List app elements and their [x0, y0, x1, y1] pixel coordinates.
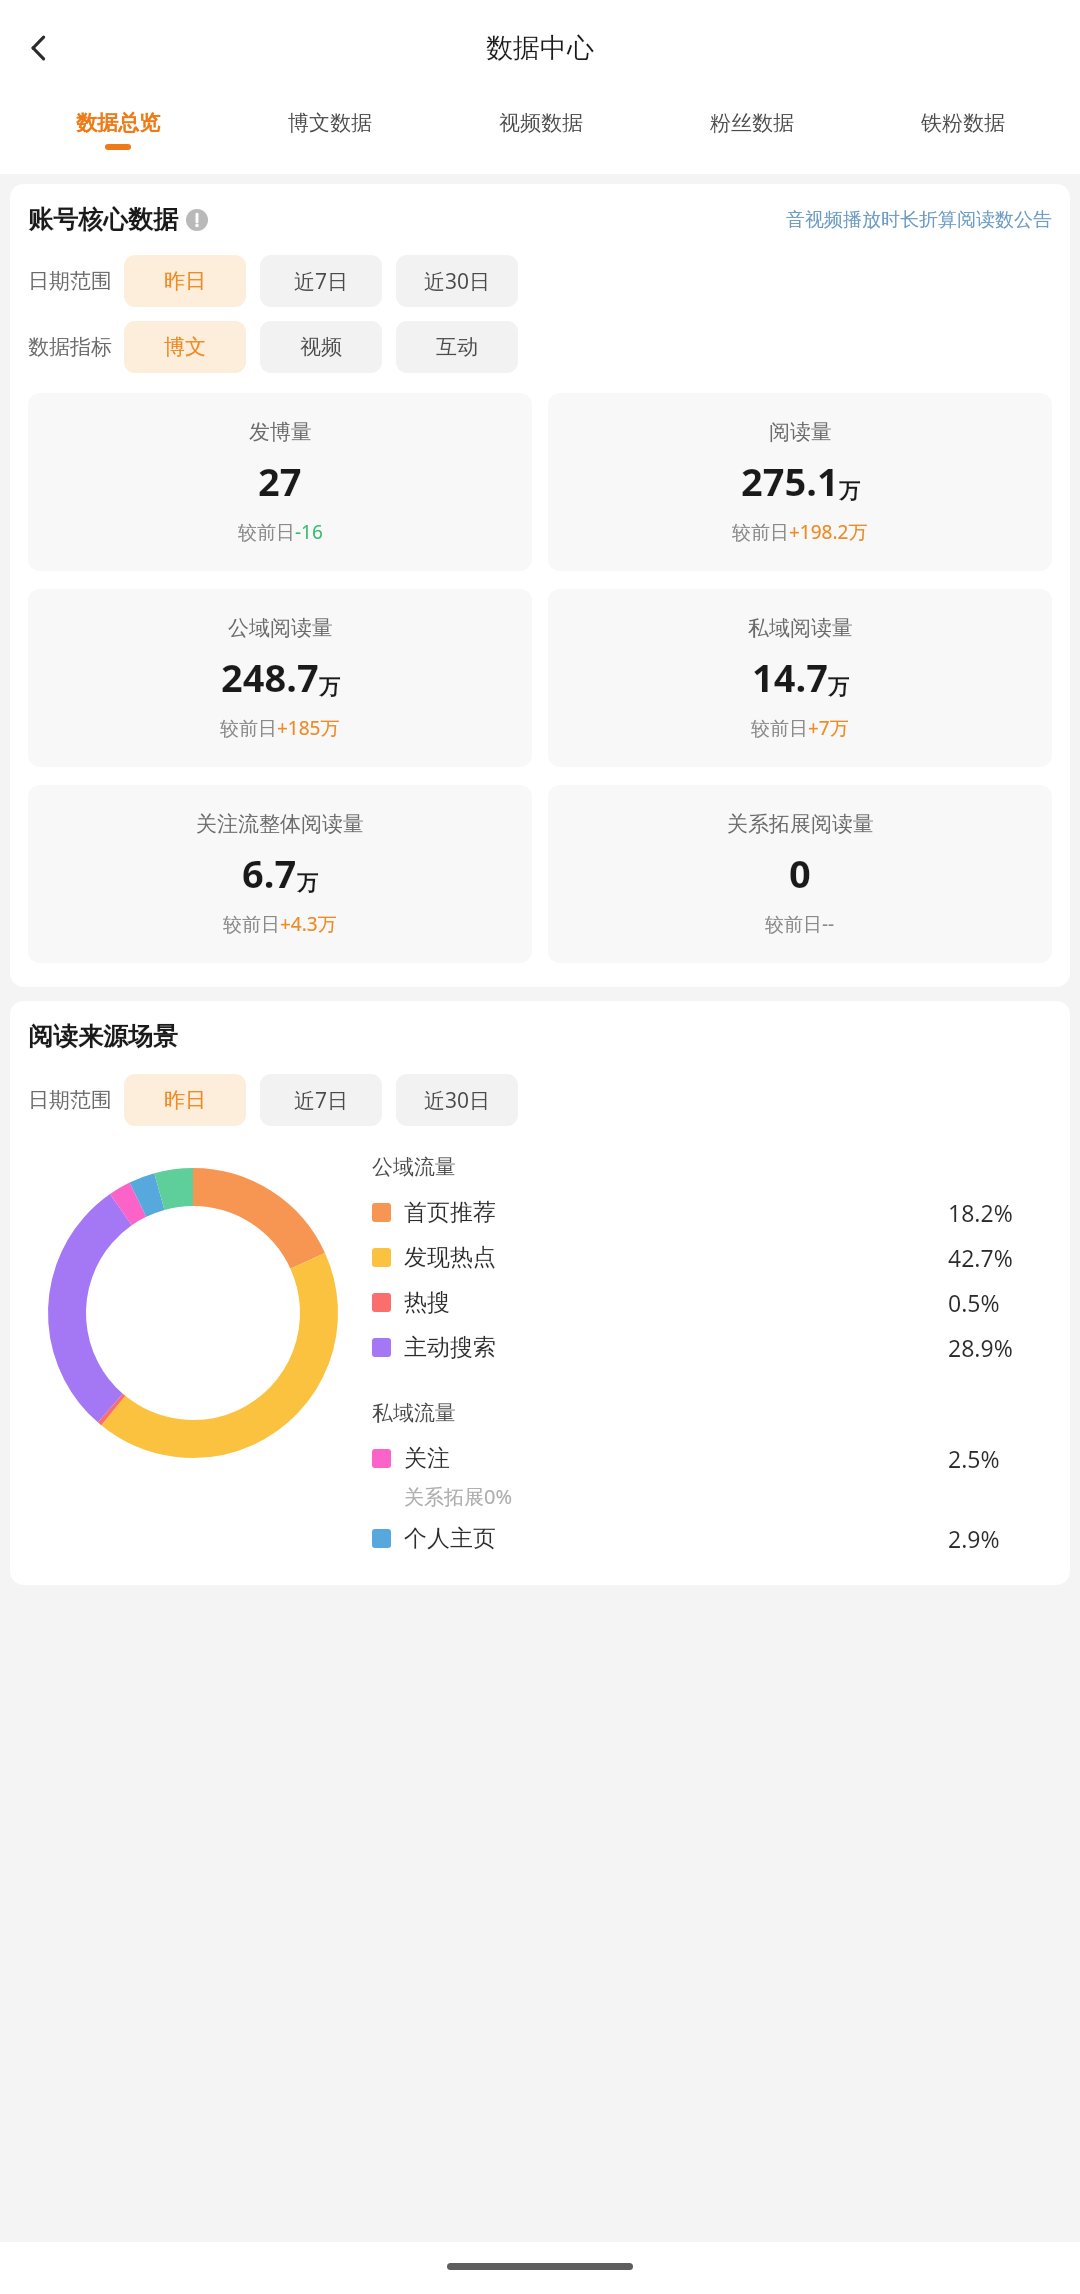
staticText: 关系拓展0%	[404, 1483, 513, 1510]
staticText: 万	[839, 478, 860, 504]
staticText: 万	[319, 674, 340, 700]
staticText: 昨日	[164, 1087, 206, 1113]
staticText: 0	[789, 847, 811, 899]
button[interactable]: 发现热点	[372, 1235, 1052, 1280]
staticText: 近7日	[294, 267, 349, 296]
staticText: 视频数据	[499, 110, 583, 136]
button[interactable]: 主动搜索	[372, 1325, 1052, 1370]
staticText: 较前日+7万	[751, 715, 849, 741]
staticText: 博文	[164, 334, 206, 360]
button[interactable]: 个人主页	[372, 1516, 1052, 1561]
button[interactable]: 音视频播放时长折算阅读数公告	[786, 208, 1052, 232]
button[interactable]: 昨日	[124, 255, 246, 307]
button[interactable]: 发博量	[28, 393, 532, 571]
staticText: 较前日+4.3万	[223, 911, 337, 937]
staticText: 较前日-16	[238, 519, 323, 545]
staticText: 数据中心	[486, 31, 594, 65]
staticText: 互动	[436, 334, 478, 360]
button[interactable]: 近7日	[260, 1074, 382, 1126]
staticText: 铁粉数据	[921, 110, 1005, 136]
staticText: 近7日	[294, 1086, 349, 1115]
staticText: 账号核心数据	[28, 204, 178, 235]
staticText: 发博量	[249, 419, 312, 445]
button[interactable]: 热搜	[372, 1280, 1052, 1325]
staticText: 近30日	[424, 267, 491, 296]
staticText: 2.9%	[948, 1523, 1000, 1554]
button[interactable]: 数据总览	[12, 96, 224, 150]
button[interactable]: 关注流整体阅读量	[28, 785, 532, 963]
staticText: 博文数据	[288, 110, 372, 136]
staticText: 视频	[300, 334, 342, 360]
staticText: 275.1	[741, 455, 839, 507]
staticText: 个人主页	[404, 1524, 496, 1553]
staticText: 6.7	[242, 847, 297, 899]
staticText: 较前日+198.2万	[732, 519, 868, 545]
button[interactable]: 首页推荐	[372, 1190, 1052, 1235]
staticText: 私域阅读量	[748, 615, 853, 641]
staticText: 昨日	[164, 268, 206, 294]
staticText: 0.5%	[948, 1287, 1000, 1318]
staticText: 首页推荐	[404, 1198, 496, 1227]
staticText: 粉丝数据	[710, 110, 794, 136]
button[interactable]: 近7日	[260, 255, 382, 307]
button[interactable]: 阅读量	[548, 393, 1052, 571]
staticText: 公域流量	[372, 1154, 456, 1180]
staticText: 热搜	[404, 1288, 450, 1317]
button[interactable]: 视频数据	[435, 96, 646, 150]
staticText: 日期范围	[28, 1087, 112, 1113]
staticText: 关系拓展阅读量	[727, 811, 874, 837]
staticText: 较前日--	[765, 911, 835, 937]
staticText: 主动搜索	[404, 1333, 496, 1362]
button[interactable]: Back	[8, 16, 72, 80]
staticText: 42.7%	[948, 1242, 1013, 1273]
button[interactable]: 铁粉数据	[857, 96, 1068, 150]
staticText: 数据总览	[76, 110, 160, 136]
staticText: 私域流量	[372, 1400, 456, 1426]
staticText: 14.7	[752, 651, 828, 703]
staticText: 音视频播放时长折算阅读数公告	[786, 208, 1052, 232]
staticText: 发现热点	[404, 1243, 496, 1272]
button[interactable]: 关注	[372, 1436, 1052, 1481]
staticText: 18.2%	[948, 1197, 1013, 1228]
button[interactable]: 粉丝数据	[646, 96, 857, 150]
button[interactable]: 关系拓展阅读量	[548, 785, 1052, 963]
button[interactable]: 互动	[396, 321, 518, 373]
button[interactable]: 近30日	[396, 255, 518, 307]
staticText: 27	[258, 455, 302, 507]
staticText: 万	[828, 674, 849, 700]
staticText: 关注流整体阅读量	[196, 811, 364, 837]
button[interactable]: 视频	[260, 321, 382, 373]
staticText: 248.7	[221, 651, 319, 703]
button[interactable]: 博文数据	[224, 96, 435, 150]
staticText: 阅读来源场景	[28, 1021, 178, 1052]
button[interactable]: 昨日	[124, 1074, 246, 1126]
button[interactable]: 公域阅读量	[28, 589, 532, 767]
staticText: 数据指标	[28, 334, 112, 360]
button[interactable]: 博文	[124, 321, 246, 373]
staticText: 近30日	[424, 1086, 491, 1115]
button[interactable]: Info	[186, 209, 208, 231]
staticText: 2.5%	[948, 1443, 1000, 1474]
button[interactable]: 近30日	[396, 1074, 518, 1126]
staticText: 28.9%	[948, 1332, 1013, 1363]
staticText: 公域阅读量	[228, 615, 333, 641]
staticText: 阅读量	[769, 419, 832, 445]
button[interactable]: 私域阅读量	[548, 589, 1052, 767]
staticText: 万	[297, 870, 318, 896]
staticText: 日期范围	[28, 268, 112, 294]
staticText: 较前日+185万	[220, 715, 340, 741]
staticText: 关注	[404, 1444, 450, 1473]
